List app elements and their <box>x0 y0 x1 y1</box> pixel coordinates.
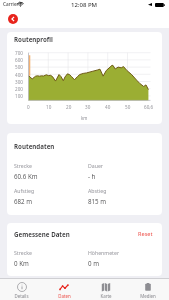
staticText: 50 <box>125 104 131 110</box>
button[interactable]: Reset <box>136 229 155 239</box>
button[interactable]: Details <box>0 280 43 299</box>
staticText: 300 <box>15 79 23 85</box>
staticText: 700 <box>15 50 23 56</box>
staticText: - h <box>88 172 96 180</box>
staticText: 40 <box>105 104 111 110</box>
staticText: 815 m <box>88 197 107 205</box>
staticText: Dauer <box>88 162 103 169</box>
staticText: Gemessene Daten <box>14 230 70 238</box>
button[interactable]: Medien <box>127 280 169 299</box>
staticText: Aufstieg <box>14 187 35 194</box>
staticText: 200 <box>15 86 23 92</box>
staticText: 12:08 PM <box>71 1 98 9</box>
staticText: 682 m <box>14 197 33 205</box>
button[interactable]: Daten <box>43 280 85 299</box>
staticText: 30 <box>85 104 91 110</box>
staticText: Abstieg <box>88 187 107 194</box>
staticText: Daten <box>58 293 71 299</box>
staticText: 20 <box>66 104 72 110</box>
staticText: 0 <box>27 104 30 110</box>
staticText: Karte <box>100 293 112 299</box>
staticText: 500 <box>15 64 23 70</box>
staticText: Medien <box>140 293 156 299</box>
staticText: 10 <box>46 104 52 110</box>
staticText: Details <box>14 293 29 299</box>
staticText: km <box>81 115 88 121</box>
staticText: 60.6 Km <box>14 172 38 180</box>
staticText: 60,6 <box>144 104 154 110</box>
staticText: 0 Km <box>14 259 29 267</box>
staticText: Reset <box>138 230 153 238</box>
staticText: 400 <box>15 72 23 78</box>
staticText: 100 <box>15 93 23 99</box>
staticText: 0 m <box>88 259 99 267</box>
staticText: Höhenmeter <box>88 249 120 256</box>
staticText: Routenprofil <box>14 35 53 43</box>
button[interactable]: Back <box>8 14 18 24</box>
staticText: 600 <box>15 57 23 63</box>
staticText: Routendaten <box>14 142 55 150</box>
staticText: Strecke <box>14 162 32 169</box>
staticText: Carrier <box>3 1 19 7</box>
button[interactable]: Karte <box>85 280 127 299</box>
staticText: Strecke <box>14 249 32 256</box>
